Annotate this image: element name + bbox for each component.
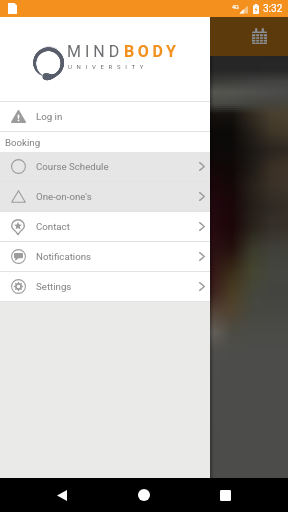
staticText: Course Schedule xyxy=(36,161,109,172)
button[interactable]: Back xyxy=(41,478,83,512)
button[interactable]: Recents xyxy=(204,478,246,512)
staticText: Booking xyxy=(5,137,41,148)
staticText: Log in xyxy=(36,111,63,122)
button[interactable]: Home xyxy=(122,478,165,512)
button[interactable]: Calendar xyxy=(251,28,268,45)
staticText: One-on-one's xyxy=(36,191,92,202)
button[interactable]: Notifications xyxy=(0,242,210,271)
staticText: BODY xyxy=(124,42,180,61)
button[interactable]: One-on-one's xyxy=(0,182,210,211)
button[interactable]: Settings xyxy=(0,272,210,301)
button[interactable]: Log in xyxy=(0,102,210,131)
button[interactable]: Course Schedule xyxy=(0,152,210,181)
staticText: UNIVERSITY xyxy=(68,63,149,70)
staticText: 3:32 xyxy=(263,3,283,15)
button[interactable]: Contact xyxy=(0,212,210,241)
staticText: MIND xyxy=(67,42,124,61)
staticText: Settings xyxy=(36,281,72,292)
staticText: 4G xyxy=(232,4,239,10)
staticText: Notifications xyxy=(36,251,92,262)
staticText: Contact xyxy=(36,221,70,232)
